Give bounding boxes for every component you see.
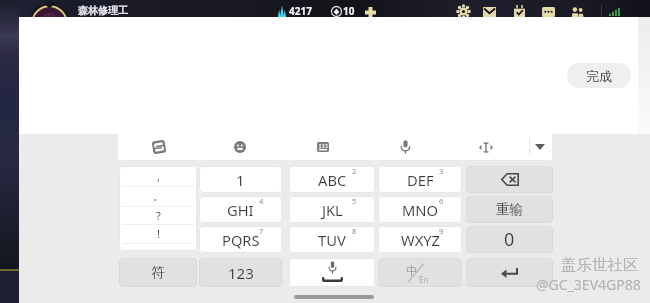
staticText: JKL xyxy=(322,200,343,220)
button[interactable]: 完成 xyxy=(567,63,631,88)
staticText: GHI xyxy=(227,200,254,220)
staticText: 重输 xyxy=(496,201,523,218)
button[interactable]: Emoji xyxy=(226,134,254,160)
staticText: 4217 xyxy=(289,4,312,18)
staticText: ! xyxy=(157,226,160,241)
button[interactable]: Move cursor xyxy=(472,134,500,160)
button[interactable]: , xyxy=(119,166,197,251)
button[interactable]: DEF xyxy=(378,166,462,193)
button[interactable]: Hide keyboard xyxy=(526,134,554,160)
button[interactable]: Mail xyxy=(477,5,501,18)
staticText: 8 xyxy=(352,226,357,236)
staticText: 2 xyxy=(352,166,357,176)
button[interactable]: Settings xyxy=(451,5,475,18)
staticText: 盖乐世社区 xyxy=(561,255,639,275)
staticText: , xyxy=(157,169,160,184)
staticText: 4 xyxy=(259,196,264,206)
staticText: 。 xyxy=(153,189,164,203)
staticText: 0 xyxy=(504,227,515,252)
staticText: 完成 xyxy=(586,68,612,84)
staticText: 中 xyxy=(406,263,418,278)
staticText: 9 xyxy=(439,226,444,236)
staticText: 10 xyxy=(343,4,355,18)
button[interactable]: WXYZ xyxy=(378,226,462,253)
button[interactable]: Space / voice input xyxy=(289,258,375,287)
staticText: 符 xyxy=(151,264,165,281)
staticText: 123 xyxy=(228,263,254,283)
staticText: WXYZ xyxy=(401,230,440,250)
staticText: 5 xyxy=(352,196,357,206)
button[interactable]: GHI xyxy=(199,196,282,223)
button[interactable]: PQRS xyxy=(199,226,282,253)
button[interactable]: 123 xyxy=(199,258,282,287)
staticText: ABC xyxy=(318,170,347,190)
staticText: 森林修理工 xyxy=(78,4,128,17)
button[interactable]: Voice input xyxy=(391,134,419,160)
staticText: En xyxy=(419,274,429,285)
button[interactable]: JKL xyxy=(289,196,375,223)
button[interactable]: Keyboard layout xyxy=(309,134,337,160)
staticText: 3 xyxy=(439,166,444,176)
button[interactable]: Sogou input xyxy=(145,134,173,160)
button[interactable]: Enter xyxy=(466,258,553,287)
button[interactable]: MNO xyxy=(378,196,462,223)
button[interactable]: TUV xyxy=(289,226,375,253)
button[interactable]: Tasks xyxy=(507,5,531,18)
button[interactable]: 1 xyxy=(199,166,282,193)
button[interactable]: Backspace xyxy=(466,166,553,193)
button[interactable]: Friends xyxy=(565,5,589,18)
staticText: MNO xyxy=(402,200,438,220)
staticText: ? xyxy=(156,208,161,223)
staticText: 6 xyxy=(439,196,444,206)
button[interactable]: Switch language xyxy=(378,258,462,287)
button[interactable]: 重输 xyxy=(466,196,553,223)
staticText: 7 xyxy=(259,226,264,236)
button[interactable]: Chat xyxy=(536,5,560,18)
button[interactable]: 符 xyxy=(119,258,197,287)
button[interactable]: 0 xyxy=(466,226,553,253)
staticText: PQRS xyxy=(222,230,260,250)
staticText: @GC_3EV4GP88 xyxy=(536,275,641,294)
staticText: DEF xyxy=(407,170,434,190)
staticText: 1 xyxy=(236,170,245,190)
staticText: TUV xyxy=(318,230,346,250)
button[interactable]: ABC xyxy=(289,166,375,193)
